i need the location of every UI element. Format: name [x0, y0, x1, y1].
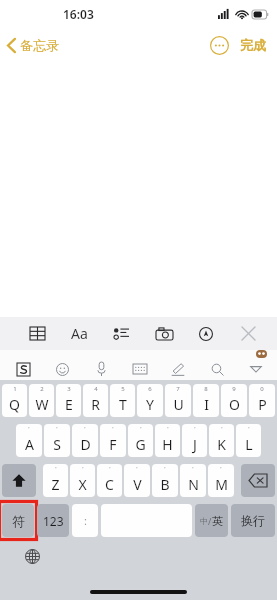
- button[interactable]: 4: [83, 384, 108, 417]
- button[interactable]: ': [180, 464, 206, 497]
- staticText: L: [245, 435, 253, 454]
- staticText: ': [167, 425, 169, 433]
- staticText: D: [80, 435, 91, 454]
- staticText: Q: [9, 395, 20, 414]
- button[interactable]: 2: [29, 384, 54, 417]
- button[interactable]: ': [128, 424, 153, 457]
- button[interactable]: 8: [193, 384, 219, 417]
- button[interactable]: Emoji: [49, 358, 75, 380]
- staticText: 8: [204, 385, 208, 393]
- button[interactable]: ': [208, 464, 234, 497]
- staticText: ': [82, 465, 84, 473]
- button[interactable]: Voice input: [88, 358, 114, 380]
- staticText: 3: [67, 385, 71, 393]
- button[interactable]: More options: [210, 36, 229, 55]
- button[interactable]: Camera: [149, 318, 179, 349]
- button[interactable]: Punctuation: [72, 504, 98, 537]
- staticText: F: [109, 435, 117, 454]
- staticText: J: [193, 435, 197, 454]
- button[interactable]: Checklist: [106, 318, 136, 349]
- button[interactable]: 7: [165, 384, 191, 417]
- button[interactable]: ': [209, 424, 234, 457]
- button[interactable]: Keyboard settings: [127, 358, 153, 380]
- staticText: N: [188, 475, 199, 494]
- staticText: Z: [51, 475, 60, 494]
- button[interactable]: Text format: [64, 318, 94, 349]
- staticText: ': [84, 425, 86, 433]
- button[interactable]: ': [100, 424, 126, 457]
- staticText: ': [28, 425, 30, 433]
- staticText: ': [164, 465, 166, 473]
- staticText: S: [53, 435, 61, 454]
- staticText: 1: [13, 385, 17, 393]
- staticText: H: [162, 435, 173, 454]
- button[interactable]: Close keyboard: [233, 318, 263, 349]
- button[interactable]: Handwriting: [165, 358, 191, 380]
- staticText: 备忘录: [20, 37, 59, 53]
- button[interactable]: Search: [204, 358, 230, 380]
- staticText: :: [84, 513, 87, 528]
- staticText: R: [91, 395, 100, 414]
- staticText: G: [135, 435, 146, 454]
- button[interactable]: ': [16, 424, 42, 457]
- button[interactable]: ': [155, 424, 180, 457]
- staticText: U: [173, 395, 184, 414]
- staticText: ': [140, 425, 142, 433]
- staticText: Aa: [71, 324, 88, 343]
- button[interactable]: 备忘录: [0, 33, 67, 57]
- button[interactable]: ': [44, 424, 70, 457]
- button[interactable]: Shift: [2, 464, 36, 497]
- staticText: V: [133, 475, 142, 494]
- button[interactable]: ': [43, 464, 68, 497]
- staticText: 换行: [241, 513, 265, 528]
- button[interactable]: ': [236, 424, 261, 457]
- button[interactable]: ': [97, 464, 122, 497]
- staticText: Y: [146, 395, 154, 414]
- button[interactable]: ': [70, 464, 95, 497]
- staticText: 中: [200, 516, 208, 526]
- button[interactable]: ': [182, 424, 207, 457]
- button[interactable]: 5: [110, 384, 135, 417]
- button[interactable]: 完成: [238, 33, 268, 57]
- staticText: C: [105, 475, 114, 494]
- staticText: ': [248, 425, 250, 433]
- staticText: 5: [121, 385, 125, 393]
- button[interactable]: Collapse: [243, 358, 269, 380]
- staticText: ': [55, 465, 57, 473]
- staticText: 123: [43, 513, 64, 529]
- staticText: M: [215, 475, 228, 494]
- staticText: ': [194, 425, 196, 433]
- button[interactable]: Sogou input: [10, 358, 36, 380]
- button[interactable]: ': [152, 464, 178, 497]
- button[interactable]: ': [124, 464, 150, 497]
- button[interactable]: 1: [2, 384, 27, 417]
- staticText: P: [258, 395, 267, 414]
- button[interactable]: Table: [22, 318, 52, 349]
- button[interactable]: 6: [137, 384, 163, 417]
- button[interactable]: 符: [2, 504, 34, 537]
- staticText: 4: [94, 385, 98, 393]
- button[interactable]: 3: [56, 384, 81, 417]
- staticText: 9: [232, 385, 236, 393]
- button[interactable]: 换行: [231, 504, 275, 537]
- staticText: T: [119, 395, 127, 414]
- button[interactable]: Switch keyboard language: [20, 544, 44, 568]
- button[interactable]: Backspace: [241, 464, 275, 497]
- staticText: K: [217, 435, 226, 454]
- button[interactable]: Markup: [191, 318, 221, 349]
- staticText: X: [78, 475, 87, 494]
- staticText: 6: [148, 385, 152, 393]
- staticText: 2: [40, 385, 44, 393]
- button[interactable]: 123: [37, 504, 69, 537]
- staticText: 符: [12, 513, 25, 529]
- staticText: ': [221, 425, 223, 433]
- button[interactable]: Switch Chinese English: [195, 504, 228, 537]
- button[interactable]: ': [72, 424, 98, 457]
- button[interactable]: 9: [221, 384, 247, 417]
- staticText: 7: [176, 385, 180, 393]
- staticText: 完成: [240, 37, 266, 53]
- staticText: I: [204, 395, 209, 414]
- staticText: O: [229, 395, 240, 414]
- button[interactable]: 0: [249, 384, 275, 417]
